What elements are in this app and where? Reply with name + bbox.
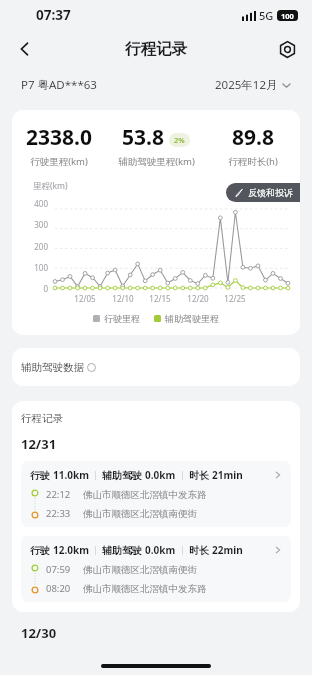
staticText: 反馈和投诉 [248,187,293,198]
staticText: 0.0km [145,543,176,557]
button[interactable]: 行驶 [21,461,291,527]
staticText: 300 [12,219,48,230]
button[interactable]: Back [8,32,42,66]
staticText: 行驶里程 [104,313,140,324]
staticText: 行程记录 [21,412,63,425]
staticText: 22min [212,543,243,557]
staticText: 行程时长(h) [228,155,278,168]
staticText: P7 粤AD***63 [21,77,97,93]
staticText: 佛山市顺德区北滘镇南便街 [83,564,197,576]
button[interactable]: Settings [271,33,303,65]
staticText: 2025年12月 [215,77,278,93]
staticText: 21min [212,468,243,482]
staticText: 辅助驾驶里程 [165,313,219,324]
staticText: 12.0km [53,543,89,557]
staticText: 12/30 [21,624,57,642]
button[interactable]: 行驶 [21,536,291,602]
staticText: 辅助驾驶里程(km) [118,155,195,168]
staticText: 53.8 [122,123,164,152]
staticText: 0 [12,283,48,294]
staticText: 2338.0 [26,123,92,152]
staticText: 0.0km [145,468,176,482]
staticText: 100 [281,11,294,21]
staticText: 行驶 [30,468,53,482]
staticText: 89.8 [232,123,274,152]
staticText: 里程(km) [33,180,68,192]
staticText: 400 [12,198,48,209]
staticText: 11.0km [53,468,89,482]
button[interactable]: 反馈和投诉 [226,183,300,202]
staticText: 12/15 [145,293,175,304]
staticText: 2% [174,135,185,145]
staticText: 12/05 [70,293,100,304]
staticText: 佛山市顺德区北滘镇中发东路 [83,489,207,501]
staticText: 22:33 [46,507,71,520]
staticText: 5G [259,8,274,23]
staticText: 佛山市顺德区北滘镇中发东路 [83,583,207,595]
staticText: 时长 [189,543,212,557]
staticText: 07:37 [36,6,71,24]
staticText: 行驶里程(km) [30,155,88,168]
staticText: 12/25 [220,293,250,304]
staticText: 行程记录 [125,39,187,59]
staticText: 12/31 [21,435,57,453]
staticText: 佛山市顺德区北滘镇南便街 [83,508,197,520]
staticText: 时长 [189,468,212,482]
staticText: 200 [12,241,48,252]
button[interactable]: 2025年12月 [215,77,291,93]
staticText: 08:20 [46,582,71,595]
staticText: 22:12 [46,488,71,501]
staticText: 行驶 [30,543,53,557]
staticText: 07:59 [46,563,71,576]
button[interactable]: 辅助驾驶数据 [12,348,300,386]
staticText: 辅助驾驶 [102,468,145,482]
staticText: 12/10 [108,293,138,304]
staticText: 辅助驾驶 [102,543,145,557]
staticText: 12/20 [183,293,213,304]
staticText: 100 [12,262,48,273]
staticText: 辅助驾驶数据 [21,361,84,374]
